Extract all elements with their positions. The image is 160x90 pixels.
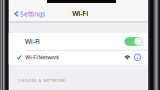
button[interactable]: Wi-Fi Network (8, 50, 148, 64)
staticText: Wi-Fi Network (25, 54, 59, 61)
button[interactable]: Settings (10, 6, 47, 21)
staticText: CHOOSE A NETWORK... (18, 78, 69, 83)
staticText: Settings (20, 9, 45, 18)
staticText: Wi-Fi (72, 9, 88, 18)
staticText: Wi-Fi (25, 37, 40, 46)
button[interactable]: Wi-Fi (8, 33, 148, 50)
